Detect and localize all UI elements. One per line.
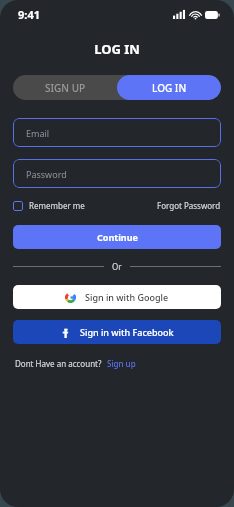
staticText: Sign up [107, 358, 136, 369]
staticText: LOG IN [0, 40, 234, 58]
button[interactable]: Password [13, 159, 221, 188]
staticText: Continue [97, 231, 138, 243]
staticText: 9:41 [18, 7, 40, 22]
button[interactable]: Forgot Password [157, 200, 221, 211]
button[interactable]: Continue [13, 225, 221, 249]
staticText: LOG IN [152, 81, 187, 95]
staticText: Forgot Password [157, 200, 221, 211]
staticText: Email [26, 127, 50, 139]
staticText: Remember me [29, 200, 85, 211]
button[interactable]: SIGN UP [13, 75, 117, 100]
staticText: SIGN UP [45, 81, 86, 95]
button[interactable]: Sign in with Google [13, 285, 221, 309]
button[interactable]: Sign up [107, 358, 136, 369]
staticText: Or [112, 261, 122, 272]
staticText: Sign in with Google [85, 291, 169, 303]
button[interactable]: Sign in with Facebook [13, 320, 221, 344]
button[interactable]: LOG IN [117, 75, 221, 100]
staticText: Dont Have an account? [15, 358, 102, 369]
button[interactable]: Email [13, 118, 221, 147]
staticText: Sign in with Facebook [80, 326, 174, 338]
staticText: Password [26, 168, 67, 180]
button[interactable]: Remember me [13, 200, 85, 211]
